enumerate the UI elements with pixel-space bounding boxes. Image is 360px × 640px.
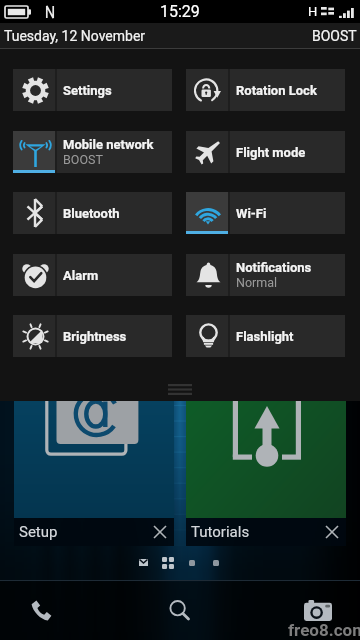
staticText: BOOST <box>312 28 357 44</box>
staticText: freo8.com <box>288 620 360 640</box>
staticText: Alarm <box>63 268 99 283</box>
button[interactable]: Notifications <box>186 254 345 296</box>
staticText: Rotation Lock <box>236 83 317 98</box>
staticText: Flashlight <box>236 329 294 344</box>
staticText: 15:29 <box>160 2 200 21</box>
button[interactable]: Messages <box>135 554 152 571</box>
staticText: Normal <box>236 275 278 290</box>
button[interactable]: Bluetooth <box>13 192 172 234</box>
button[interactable]: Tutorials <box>186 380 346 546</box>
button[interactable]: Phone <box>19 591 63 631</box>
staticText: Tuesday, 12 November <box>4 28 146 44</box>
staticText: Setup <box>19 523 58 541</box>
button[interactable]: All apps <box>159 554 176 571</box>
button[interactable]: Flight mode <box>186 131 345 173</box>
staticText: Wi-Fi <box>236 206 267 221</box>
button[interactable]: Rotation Lock <box>186 69 345 111</box>
button[interactable]: Brightness <box>13 315 172 357</box>
other: Remove <box>154 526 166 538</box>
other: Remove <box>326 526 338 538</box>
button[interactable]: Mobile network <box>13 131 172 173</box>
staticText: Notifications <box>236 260 312 275</box>
button[interactable]: Wi-Fi <box>186 192 345 234</box>
staticText: Mobile network <box>63 137 154 152</box>
staticText: BOOST <box>63 152 103 167</box>
staticText: Settings <box>63 83 112 98</box>
staticText: H <box>308 4 318 19</box>
button[interactable]: Alarm <box>13 254 172 296</box>
staticText: Flight mode <box>236 145 306 160</box>
button[interactable]: Settings <box>13 69 172 111</box>
staticText: Bluetooth <box>63 206 120 221</box>
button[interactable]: Flashlight <box>186 315 345 357</box>
button[interactable]: Camera <box>296 590 340 630</box>
staticText: Tutorials <box>191 523 250 541</box>
staticText: Brightness <box>63 329 127 344</box>
button[interactable]: Setup <box>14 380 174 546</box>
button[interactable]: Search <box>158 591 202 631</box>
